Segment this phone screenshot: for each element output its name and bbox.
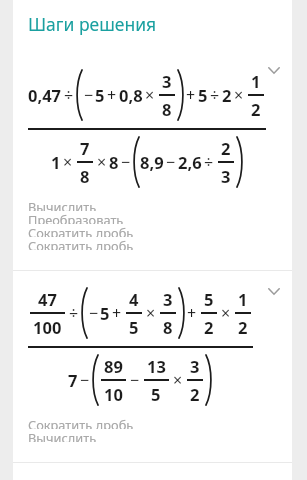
button[interactable]: 0,47 [13,48,292,270]
staticText: Вычислить [28,198,97,211]
staticText: 8,9 [140,151,164,173]
staticText: − [89,302,99,324]
staticText: − [80,369,90,391]
staticText: × [63,151,73,173]
staticText: 5 [129,316,139,338]
staticText: × [145,84,155,106]
staticText: Шаги решения [28,12,157,36]
staticText: 2 [204,316,214,338]
staticText: 8 [162,98,172,120]
staticText: 2 [238,316,248,338]
staticText: × [221,302,231,324]
staticText: − [130,369,140,391]
staticText: 2 [251,98,261,120]
staticText: ÷ [204,151,214,173]
button[interactable]: Сократить дробь [28,416,292,429]
staticText: 0,47 [28,84,62,106]
button[interactable]: Вычислить [28,198,292,211]
staticText: + [187,302,197,324]
staticText: 0,8 [119,84,143,106]
staticText: − [121,151,131,173]
staticText: 2 [222,84,232,106]
staticText: 3 [221,165,231,187]
staticText: 7 [68,369,78,391]
staticText: + [112,302,122,324]
staticText: Сократить дробь [28,416,134,429]
staticText: 89 [104,355,123,377]
staticText: + [107,84,117,106]
staticText: 8 [109,151,119,173]
staticText: ÷ [210,84,220,106]
staticText: 3 [163,288,173,310]
staticText: × [146,302,156,324]
staticText: 5 [198,84,208,106]
staticText: 2 [190,383,200,405]
staticText: 1 [51,151,61,173]
staticText: ÷ [69,302,79,324]
staticText: 5 [151,383,161,405]
staticText: 1 [251,70,261,92]
staticText: 100 [33,316,62,338]
staticText: 5 [204,288,214,310]
staticText: 7 [80,137,90,159]
staticText: Преобразовать [28,211,124,224]
staticText: + [186,84,196,106]
staticText: × [234,84,244,106]
staticText: − [84,84,94,106]
staticText: 2,6 [178,151,202,173]
staticText: − [166,151,176,173]
button[interactable]: Развернуть шаг [259,276,289,306]
staticText: Сократить дробь [28,237,134,250]
staticText: 10 [104,383,123,405]
staticText: Вычислить [28,429,97,442]
staticText: 47 [38,288,57,310]
button[interactable]: Сократить дробь [28,224,292,237]
button[interactable]: Развернуть шаг [259,55,289,85]
staticText: 1 [238,288,248,310]
button[interactable]: Сократить дробь [28,237,292,250]
button[interactable]: Вычислить [28,429,292,442]
staticText: × [97,151,107,173]
staticText: 4 [129,288,139,310]
staticText: 5 [100,302,110,324]
staticText: 13 [147,355,166,377]
staticText: 3 [190,355,200,377]
staticText: 3 [162,70,172,92]
staticText: 8 [80,165,90,187]
button[interactable]: Преобразовать [28,211,292,224]
staticText: 5 [95,84,105,106]
button[interactable]: 47 [13,271,292,462]
staticText: ÷ [64,84,74,106]
staticText: 2 [221,137,231,159]
staticText: × [173,369,183,391]
staticText: Сократить дробь [28,224,134,237]
staticText: 8 [163,316,173,338]
